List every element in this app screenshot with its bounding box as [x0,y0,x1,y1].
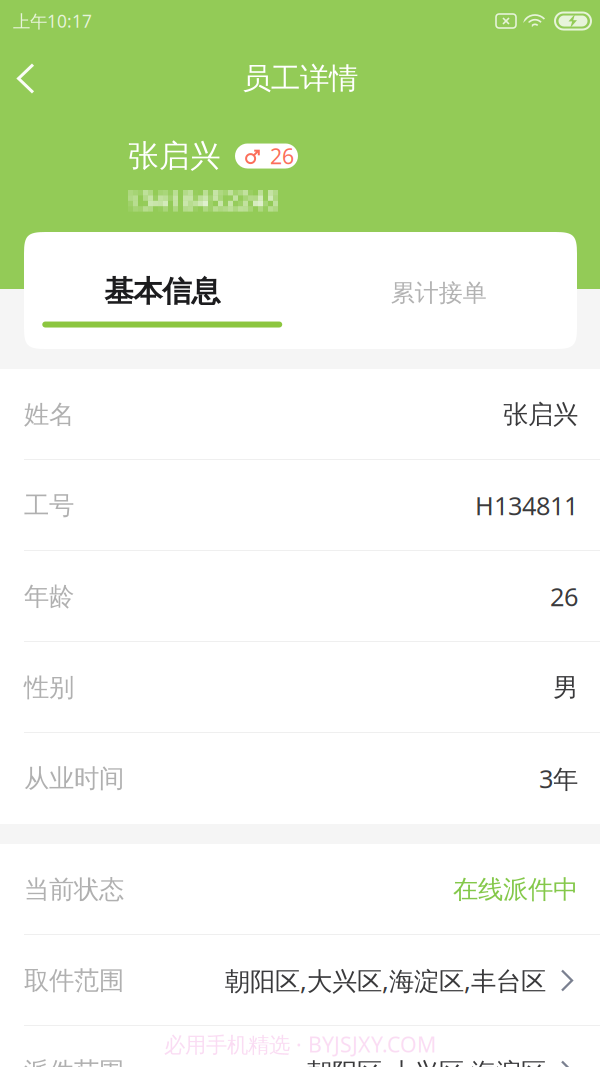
staticText: 取件范围 [24,965,124,996]
button[interactable]: 累计接单 [300,232,577,349]
button[interactable]: 从业时间 [0,733,600,824]
staticText: 上午10:17 [13,9,92,32]
staticText: 性别 [24,672,74,703]
staticText: 累计接单 [391,278,487,308]
button[interactable]: 年龄 [0,551,600,642]
button[interactable]: 姓名 [0,369,600,460]
button[interactable]: 性别 [0,642,600,733]
staticText: 张启兴 [503,399,578,430]
staticText: 姓名 [24,399,74,430]
staticText: 基本信息 [104,273,220,309]
staticText: H134811 [475,489,578,522]
button[interactable]: 当前状态 [0,844,600,935]
button[interactable]: 基本信息 [24,230,300,350]
button[interactable]: 派件范围 [0,1026,600,1067]
staticText: 在线派件中 [453,874,578,905]
staticText: 26 [270,142,294,170]
staticText: 从业时间 [24,763,124,794]
staticText: 工号 [24,490,74,521]
staticText: 必用手机精选 · BYJSJXY.COM [164,1030,436,1058]
staticText: 员工详情 [242,60,358,96]
button[interactable]: 取件范围 [0,935,600,1026]
staticText: 派件范围 [24,1056,124,1067]
staticText: 朝阳区,大兴区,海淀区,丰台区 [225,964,546,997]
staticText: 朝阳区,大兴区,海淀区 [307,1055,546,1067]
staticText: 年龄 [24,581,74,612]
button[interactable]: 工号 [0,460,600,551]
staticText: 男 [553,672,578,703]
staticText: 3年 [539,762,578,795]
staticText: 张启兴 [128,137,221,175]
button[interactable]: 返回 [0,42,52,115]
staticText: 26 [550,580,578,613]
staticText: 当前状态 [24,874,124,905]
